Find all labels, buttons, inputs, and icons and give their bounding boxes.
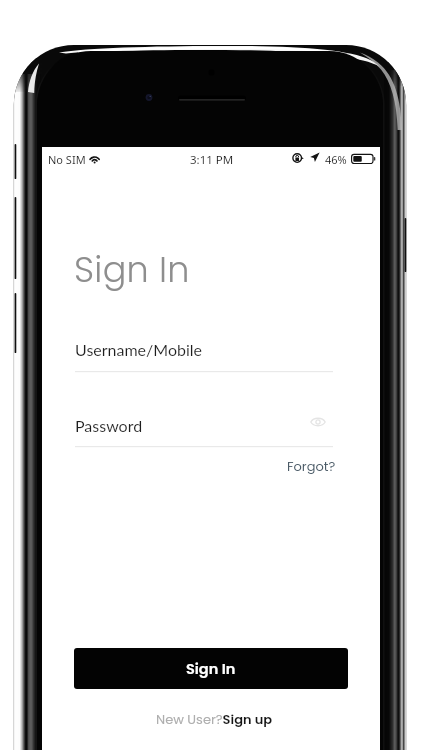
button[interactable]: Password <box>75 416 333 450</box>
button[interactable]: Show password <box>307 413 329 431</box>
staticText: 46% <box>325 152 347 167</box>
staticText: Forgot? <box>287 457 336 475</box>
staticText: Password <box>75 416 143 435</box>
staticText: Sign In <box>74 245 190 294</box>
staticText: Sign In <box>186 659 236 679</box>
staticText: New User?Sign up <box>156 710 273 728</box>
button[interactable]: Username/Mobile <box>75 340 333 375</box>
staticText: Username/Mobile <box>75 340 203 359</box>
staticText: No SIM <box>48 152 86 167</box>
staticText: 3:11 PM <box>190 152 234 168</box>
button[interactable]: Forgot? <box>278 457 336 479</box>
button[interactable]: Sign In <box>74 648 348 689</box>
button[interactable]: New User?Sign up <box>143 709 285 729</box>
